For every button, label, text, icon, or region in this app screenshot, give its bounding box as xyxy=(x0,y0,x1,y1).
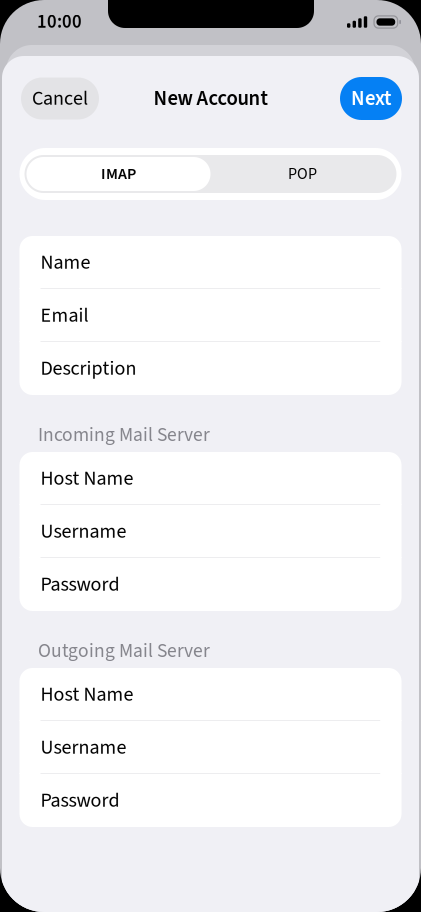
staticText: Host Name xyxy=(40,680,133,709)
button[interactable]: Cancel xyxy=(21,77,99,119)
staticText: Email xyxy=(40,301,88,330)
staticText: Next xyxy=(351,84,391,113)
button[interactable]: IMAP xyxy=(26,157,210,191)
staticText: 10:00 xyxy=(37,9,82,35)
staticText: Password xyxy=(40,570,119,599)
button[interactable]: Host Name xyxy=(19,668,401,721)
button[interactable]: Password xyxy=(19,774,401,827)
button[interactable]: Password xyxy=(19,558,401,611)
staticText: Incoming Mail Server xyxy=(38,421,210,449)
button[interactable]: POP xyxy=(210,157,394,191)
staticText: IMAP xyxy=(101,163,136,185)
staticText: Username xyxy=(40,517,126,546)
staticText: Name xyxy=(40,248,90,277)
staticText: Username xyxy=(40,733,126,762)
staticText: New Account xyxy=(153,84,267,113)
staticText: Description xyxy=(40,354,136,383)
staticText: Host Name xyxy=(40,464,133,493)
button[interactable]: Next xyxy=(340,77,402,120)
button[interactable]: Username xyxy=(19,721,401,774)
button[interactable]: Name xyxy=(19,236,401,289)
button[interactable]: Email xyxy=(19,289,401,342)
staticText: POP xyxy=(288,163,317,185)
button[interactable]: Host Name xyxy=(19,452,401,505)
staticText: Cancel xyxy=(32,84,88,113)
staticText: Outgoing Mail Server xyxy=(38,637,210,665)
button[interactable]: Description xyxy=(19,342,401,395)
staticText: Password xyxy=(40,786,119,815)
button[interactable]: Username xyxy=(19,505,401,558)
